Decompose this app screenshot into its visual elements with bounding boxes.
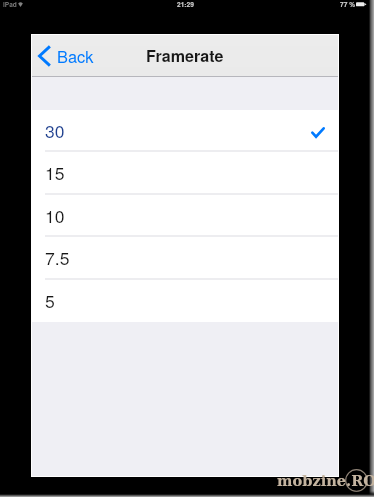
button[interactable]: 5 <box>32 280 338 322</box>
staticText: 7.5 <box>45 245 70 270</box>
button[interactable]: 30 <box>32 110 338 152</box>
staticText: 21:29 <box>177 0 194 9</box>
button[interactable]: 10 <box>32 195 338 237</box>
staticText: iPad <box>3 0 17 9</box>
staticText: Framerate <box>146 44 224 67</box>
button[interactable]: Back <box>38 35 92 77</box>
staticText: 30 <box>45 118 65 143</box>
button[interactable]: 15 <box>32 152 338 195</box>
staticText: 5 <box>45 288 55 313</box>
other: Selected <box>311 127 325 138</box>
staticText: 15 <box>45 160 65 185</box>
button[interactable]: 7.5 <box>32 237 338 280</box>
staticText: mobzine.RO <box>277 472 374 489</box>
staticText: 10 <box>45 203 65 228</box>
staticText: Back <box>57 44 94 67</box>
staticText: 77 % <box>340 0 356 9</box>
other: Back <box>38 46 50 66</box>
